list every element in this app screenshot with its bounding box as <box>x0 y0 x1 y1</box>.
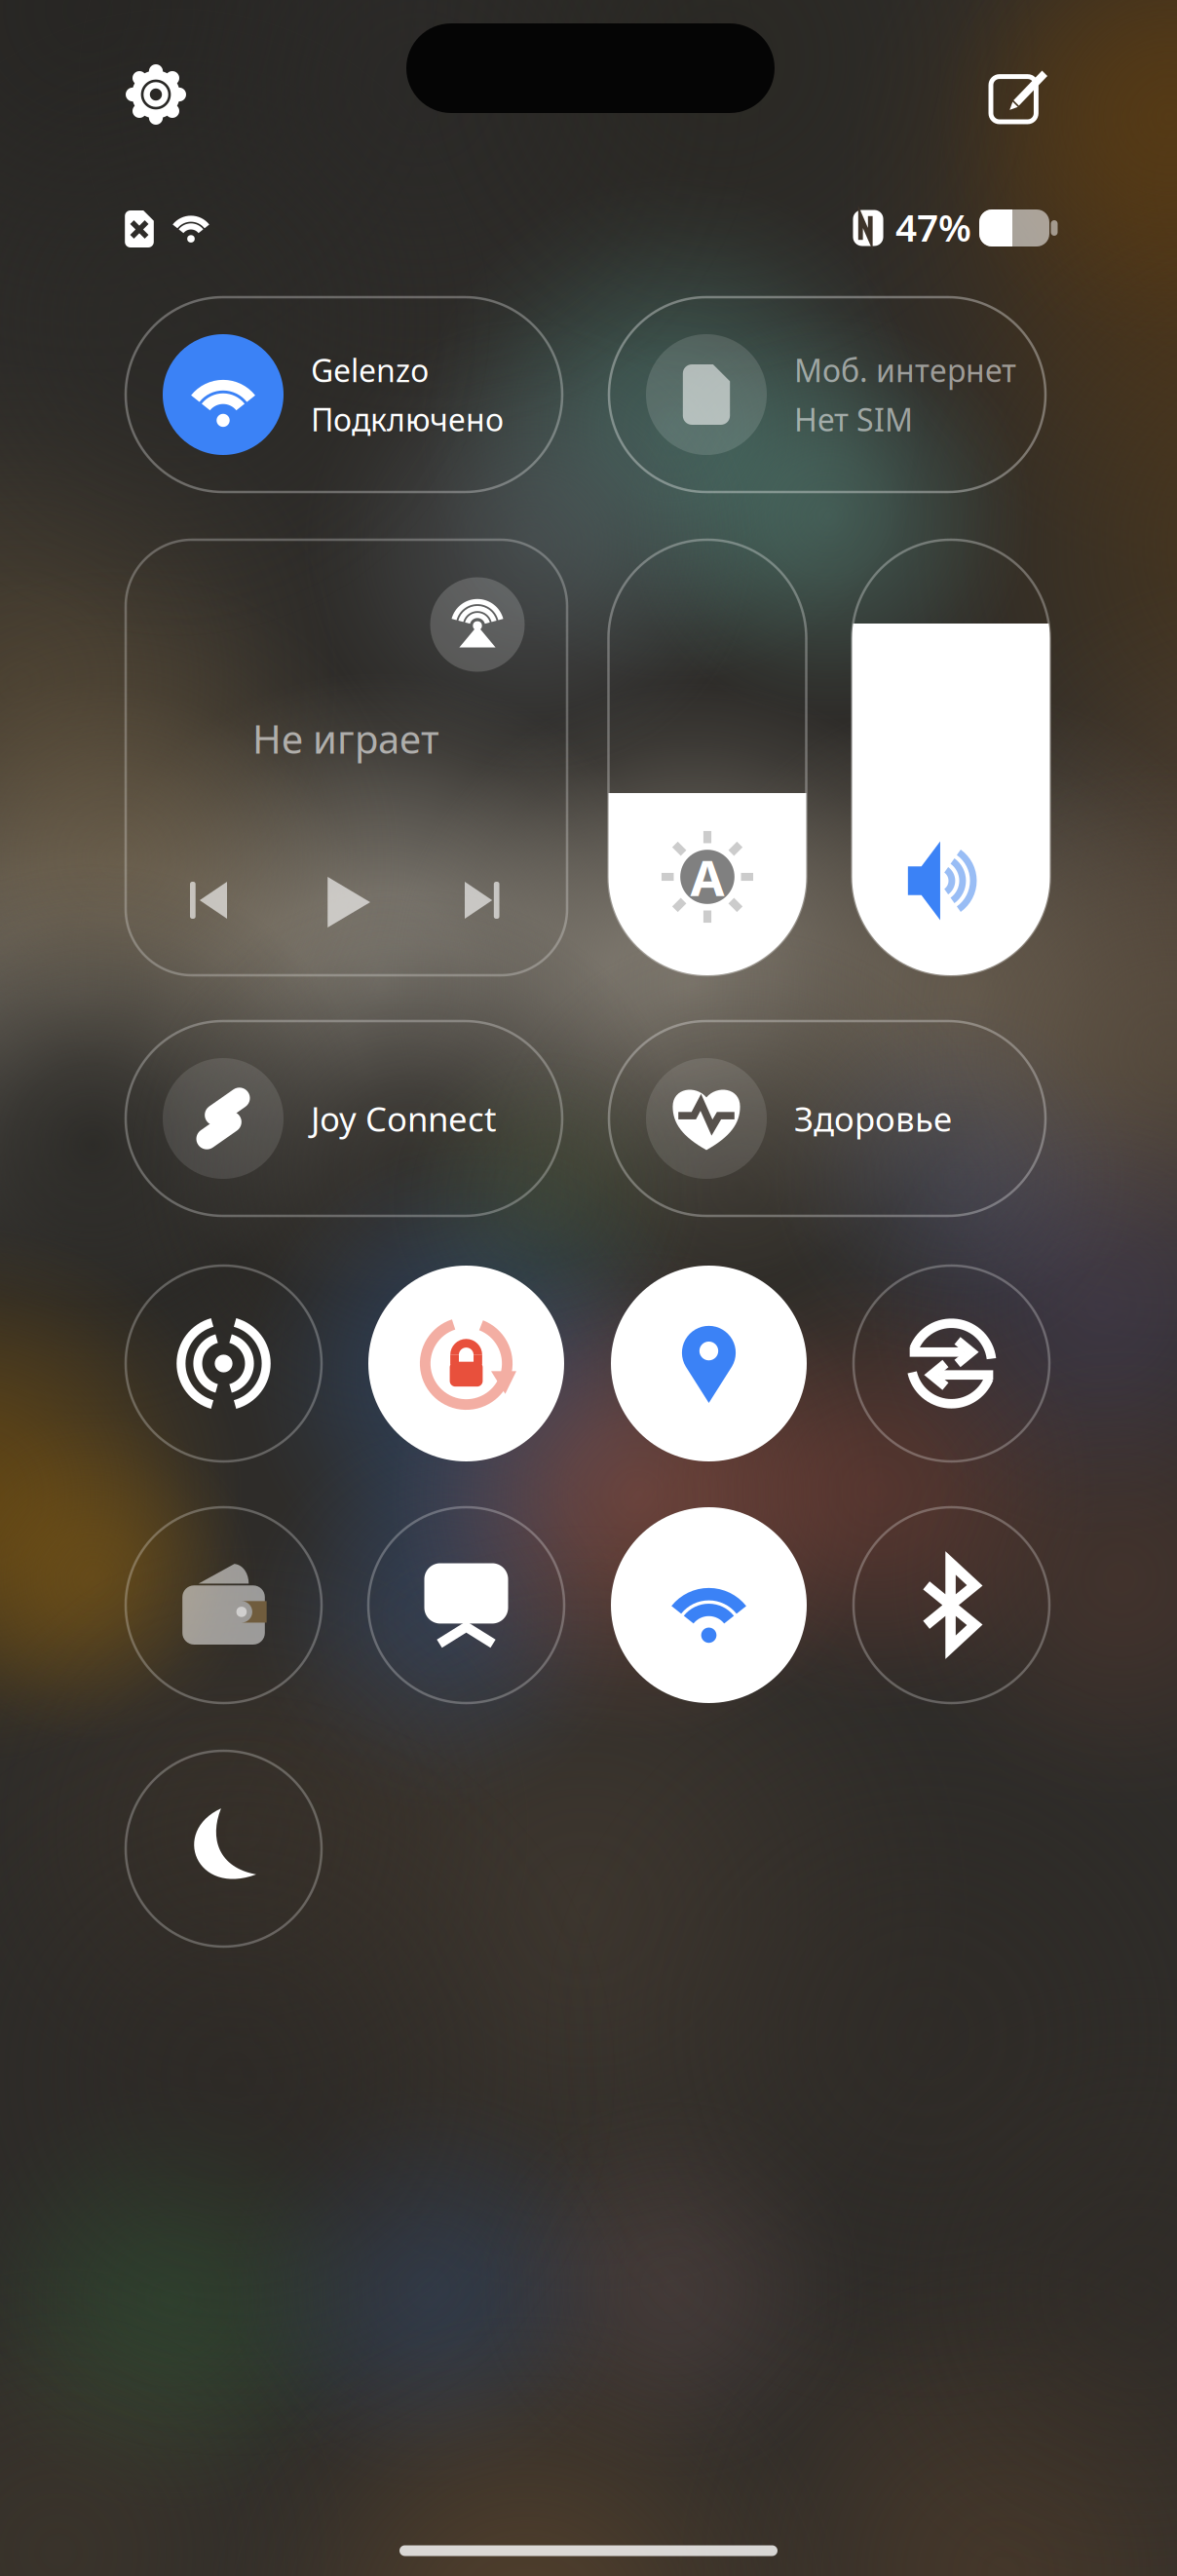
staticText: Gelenzo <box>311 349 429 391</box>
staticText: Моб. интернет <box>794 349 1016 391</box>
staticText: Не играет <box>252 713 439 764</box>
button[interactable]: Wi-Fi <box>611 1507 807 1703</box>
button[interactable]: Settings <box>101 40 210 149</box>
staticText: Нет SIM <box>794 398 913 440</box>
staticText: Подключено <box>311 398 504 440</box>
button[interactable]: Screen Distance <box>854 1266 1049 1461</box>
button[interactable]: Screen Mirroring <box>368 1507 564 1703</box>
staticText: A <box>690 844 724 910</box>
button[interactable]: Previous track <box>165 856 252 944</box>
button[interactable]: Location <box>611 1266 807 1461</box>
button[interactable]: Play <box>303 858 391 946</box>
staticText: Joy Connect <box>311 1096 497 1141</box>
button[interactable]: Volume <box>852 540 1050 975</box>
button[interactable]: Bluetooth <box>854 1507 1049 1703</box>
button[interactable]: Focus <box>126 1751 322 1947</box>
button[interactable]: Brightness <box>608 540 806 975</box>
button[interactable]: Rotation Lock <box>368 1266 564 1461</box>
button[interactable]: Wallet <box>126 1507 322 1703</box>
staticText: 47% <box>895 202 971 252</box>
button[interactable]: Здоровье <box>609 1021 1045 1216</box>
button[interactable]: Моб. интернет <box>609 297 1045 492</box>
button[interactable]: Joy Connect <box>126 1021 562 1216</box>
button[interactable]: AirDrop <box>126 1266 322 1461</box>
button[interactable]: Edit controls <box>965 39 1074 148</box>
staticText: Здоровье <box>794 1096 952 1141</box>
button[interactable]: Next track <box>439 856 527 944</box>
button[interactable]: AirPlay <box>430 577 525 672</box>
button[interactable]: Gelenzo <box>126 297 562 492</box>
